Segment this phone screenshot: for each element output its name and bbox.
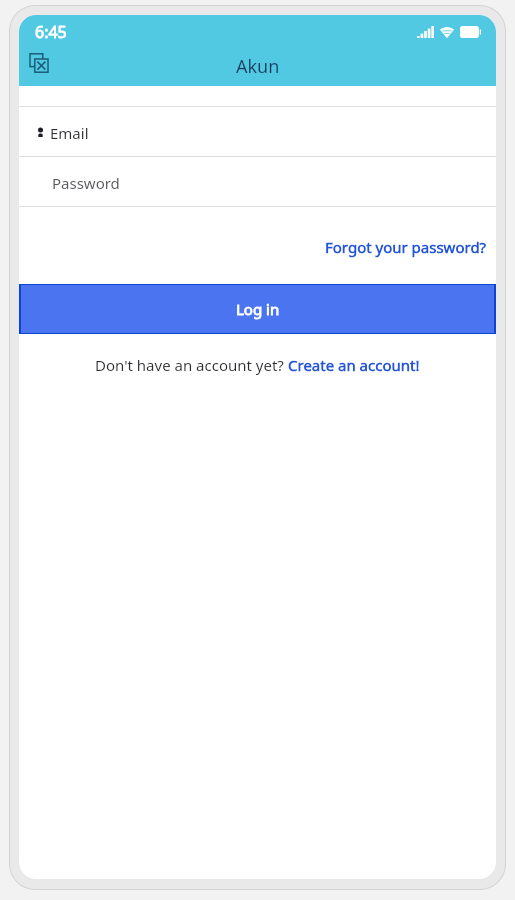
staticText: Password [52, 173, 120, 193]
staticText: Forgot your password? [325, 237, 487, 257]
button[interactable]: Close [25, 49, 53, 77]
button[interactable]: Create an account! [288, 355, 420, 375]
staticText: Don't have an account yet? [95, 355, 288, 375]
staticText: Create an account! [288, 355, 420, 375]
button[interactable]: Email [19, 107, 496, 156]
button[interactable]: Log in [19, 284, 496, 334]
staticText: Akun [236, 54, 280, 79]
staticText: 6:45 [35, 21, 67, 43]
button[interactable]: Forgot your password? [325, 237, 487, 257]
staticText: Log in [236, 299, 280, 319]
button[interactable]: Password [19, 157, 496, 206]
staticText: Email [50, 123, 89, 143]
